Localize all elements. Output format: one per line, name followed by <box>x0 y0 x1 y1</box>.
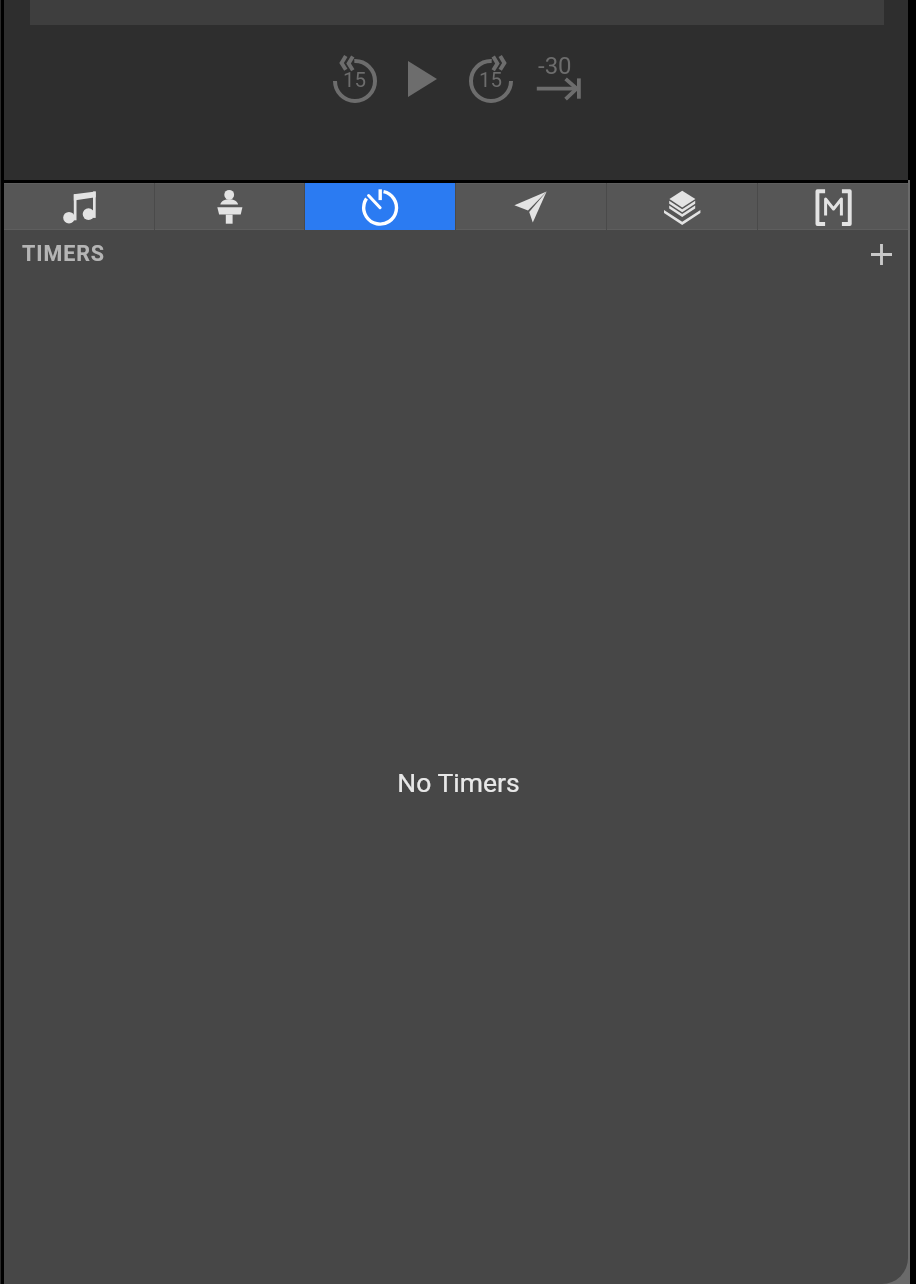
button[interactable]: Replay 15 seconds <box>326 52 384 110</box>
button[interactable]: Add timer <box>859 232 903 276</box>
button[interactable]: Speaker <box>154 183 304 230</box>
button[interactable]: Music <box>4 183 154 230</box>
button[interactable]: Forward 15 seconds <box>462 52 520 110</box>
staticText: -30 <box>538 52 572 80</box>
staticText: No Timers <box>397 767 520 798</box>
button[interactable]: Timers <box>304 183 455 230</box>
button[interactable]: Skip minus 30 seconds <box>530 52 596 118</box>
button[interactable]: Send <box>455 183 606 230</box>
staticText: TIMERS <box>22 241 105 266</box>
button[interactable]: Play <box>397 52 449 104</box>
button[interactable]: Markdown <box>757 183 908 230</box>
staticText: 15 <box>479 68 503 92</box>
button[interactable]: Layers <box>606 183 757 230</box>
staticText: 15 <box>343 68 367 92</box>
